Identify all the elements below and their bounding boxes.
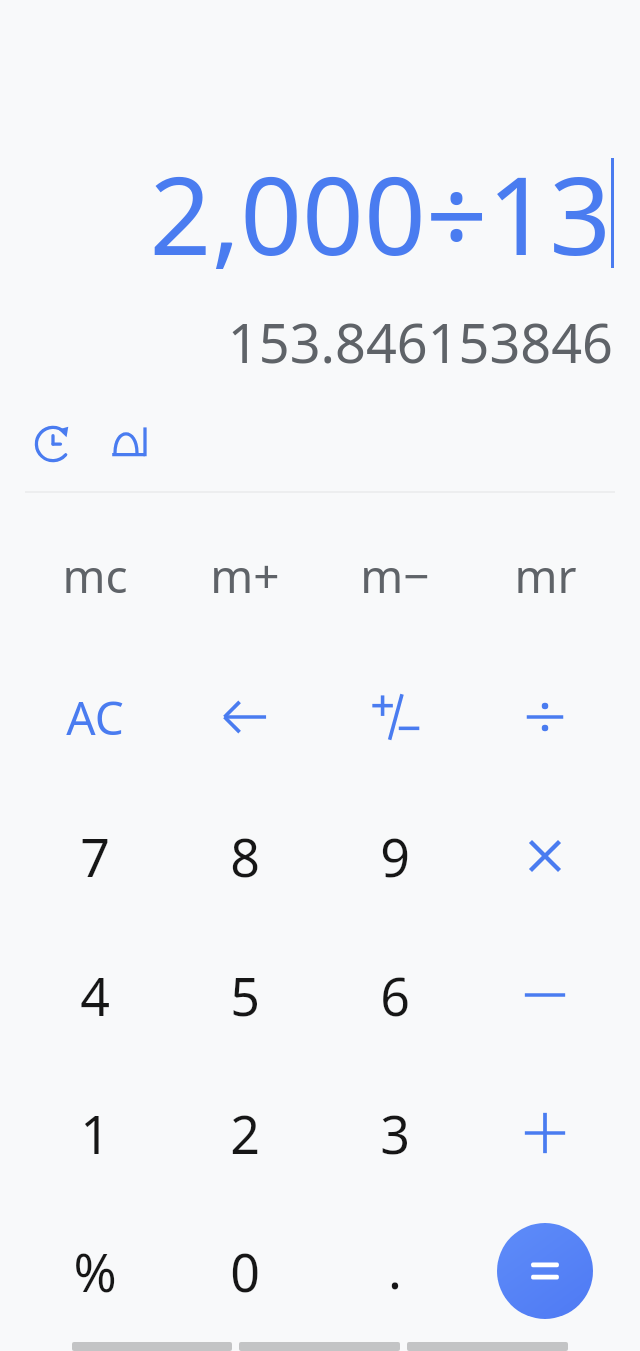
button[interactable]: Backspace <box>170 650 320 784</box>
staticText: 153.846153846 <box>227 305 613 379</box>
staticText: % <box>73 1236 117 1307</box>
staticText: 8 <box>230 821 260 892</box>
staticText: m+ <box>210 544 280 607</box>
staticText: m− <box>360 544 430 607</box>
button[interactable]: 7 <box>20 789 170 923</box>
staticText: 2,000÷13 <box>149 140 611 287</box>
button[interactable]: 6 <box>320 928 470 1062</box>
button[interactable]: 9 <box>320 789 470 923</box>
button[interactable]: 0 <box>170 1204 320 1338</box>
button[interactable]: m+ <box>170 508 320 642</box>
staticText: 2 <box>230 1098 260 1169</box>
staticText: AC <box>66 686 124 749</box>
button[interactable]: 8 <box>170 789 320 923</box>
button[interactable]: AC <box>20 650 170 784</box>
button[interactable]: Plus <box>470 1066 620 1200</box>
button[interactable]: Graph <box>98 412 160 474</box>
button[interactable]: Multiply <box>470 789 620 923</box>
staticText: 6 <box>380 960 410 1031</box>
button[interactable]: 1 <box>20 1066 170 1200</box>
button[interactable]: 3 <box>320 1066 470 1200</box>
button[interactable]: . <box>320 1201 470 1335</box>
button[interactable]: Minus <box>470 928 620 1062</box>
button[interactable]: History <box>22 412 84 474</box>
button[interactable]: Divide <box>470 650 620 784</box>
staticText: 7 <box>80 821 110 892</box>
button[interactable]: mc <box>20 508 170 642</box>
staticText: 9 <box>380 821 410 892</box>
button[interactable]: % <box>20 1204 170 1338</box>
button[interactable]: Equals <box>497 1223 593 1319</box>
staticText: . <box>388 1233 402 1304</box>
button[interactable]: 5 <box>170 928 320 1062</box>
staticText: mr <box>514 544 577 607</box>
staticText: 1 <box>80 1098 110 1169</box>
button[interactable]: m− <box>320 508 470 642</box>
button[interactable]: 2 <box>170 1066 320 1200</box>
staticText: 0 <box>230 1236 260 1307</box>
button[interactable]: Plus minus <box>320 650 470 784</box>
staticText: 5 <box>230 960 260 1031</box>
button[interactable]: 4 <box>20 928 170 1062</box>
staticText: 3 <box>380 1098 410 1169</box>
staticText: 4 <box>80 960 110 1031</box>
staticText: mc <box>62 544 128 607</box>
button[interactable]: mr <box>470 508 620 642</box>
